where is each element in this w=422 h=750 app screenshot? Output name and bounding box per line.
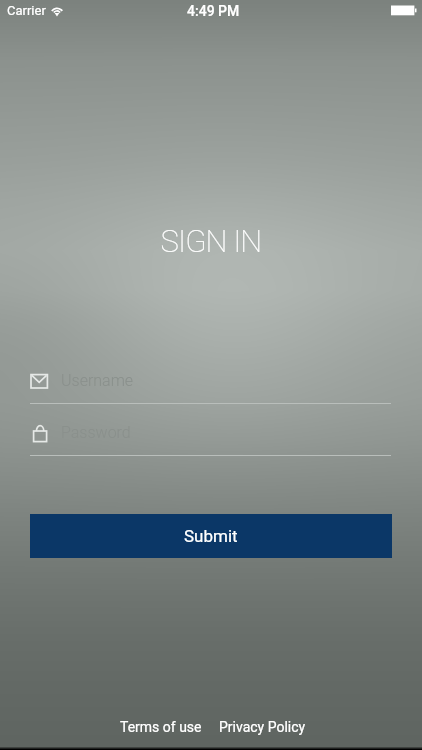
- other: Battery full: [391, 5, 417, 16]
- staticText: Username: [61, 371, 134, 390]
- button[interactable]: Password: [30, 418, 391, 456]
- button[interactable]: Submit: [30, 514, 392, 558]
- staticText: Carrier: [7, 3, 46, 18]
- staticText: SIGN IN: [0, 223, 422, 259]
- staticText: Privacy Policy: [219, 719, 306, 735]
- staticText: Terms of use: [120, 719, 202, 735]
- button[interactable]: Username: [30, 366, 391, 404]
- button[interactable]: Terms of use: [116, 716, 206, 738]
- button[interactable]: Privacy Policy: [215, 716, 310, 738]
- staticText: 4:49 PM: [187, 3, 240, 19]
- other: Wi-Fi signal: [50, 5, 65, 16]
- staticText: Submit: [184, 526, 238, 546]
